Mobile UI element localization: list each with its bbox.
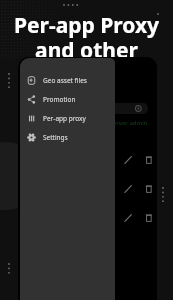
staticText: Settings: [43, 133, 68, 142]
other: Delete: [143, 183, 155, 195]
other: Promotion: [27, 95, 36, 104]
other: Edit: [122, 212, 134, 224]
other: Edit: [122, 183, 134, 195]
other: Per-app proxy: [27, 114, 36, 123]
button[interactable]: Delete: [143, 183, 155, 195]
other: Delete: [143, 212, 155, 224]
staticText: Geo asset files: [43, 76, 87, 85]
button[interactable]: Promotion: [20, 90, 115, 109]
other: Geo asset files: [27, 76, 36, 85]
staticText: Promotion: [43, 95, 76, 104]
button[interactable]: Delete: [143, 212, 155, 224]
other: Delete: [143, 154, 155, 166]
other: Edit: [122, 154, 134, 166]
staticText: Per-app Proxy and other: [10, 11, 163, 64]
button[interactable]: Edit: [122, 212, 134, 224]
button[interactable]: Geo asset files: [20, 71, 115, 90]
staticText: • server admin: [106, 119, 148, 127]
button[interactable]: Edit: [122, 154, 134, 166]
button[interactable]: Per-app proxy: [20, 109, 115, 128]
button[interactable]: Settings: [20, 128, 115, 147]
staticText: Per-app proxy: [43, 114, 86, 123]
other: Settings: [27, 133, 36, 142]
button[interactable]: Delete: [143, 154, 155, 166]
button[interactable]: Edit: [122, 183, 134, 195]
